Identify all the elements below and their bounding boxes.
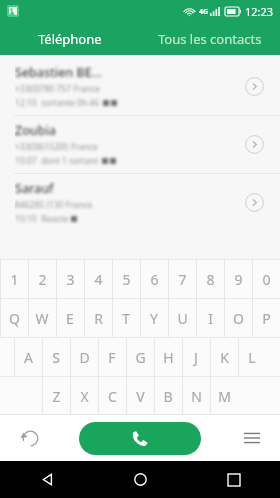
button[interactable]: 8 — [196, 260, 224, 299]
staticText: C — [108, 387, 117, 406]
button[interactable]: R — [84, 299, 112, 338]
staticText: 1 — [10, 270, 19, 289]
button[interactable]: D — [70, 338, 98, 377]
button[interactable]: 4 — [84, 260, 112, 299]
staticText: Q — [9, 309, 20, 328]
staticText: I — [208, 309, 213, 328]
button[interactable]: Détails — [228, 174, 280, 231]
button[interactable]: N — [182, 377, 210, 415]
staticText: 10:07 dont 1 sortant — [15, 155, 99, 167]
button[interactable]: 5 — [112, 260, 140, 299]
button[interactable]: V — [126, 377, 154, 415]
button[interactable]: Y — [140, 299, 168, 338]
staticText: Sarauf — [15, 180, 54, 197]
staticText: Z — [52, 387, 61, 406]
button[interactable]: Z — [42, 377, 70, 415]
button[interactable]: Accueil — [94, 461, 187, 498]
button[interactable]: Zoubia — [0, 116, 280, 173]
staticText: 12:23 — [245, 4, 274, 19]
staticText: 12:10 sortante 0h 46 — [15, 97, 100, 109]
staticText: R — [94, 309, 103, 328]
staticText: L — [248, 348, 256, 367]
staticText: G — [135, 348, 146, 367]
staticText: A — [24, 348, 33, 367]
staticText: 4 — [94, 270, 103, 289]
button[interactable]: X — [70, 377, 98, 415]
button[interactable]: W — [28, 299, 56, 338]
button[interactable]: Sebastien BE... — [0, 58, 280, 115]
staticText: 3 — [66, 270, 75, 289]
button[interactable]: Historique — [16, 424, 44, 452]
button[interactable]: U — [168, 299, 196, 338]
staticText: U — [177, 309, 188, 328]
staticText: M — [218, 387, 231, 406]
staticText: Sebastien BE... — [15, 64, 102, 81]
staticText: Zoubia — [15, 122, 56, 139]
button[interactable]: 0 — [252, 260, 280, 299]
button[interactable]: T — [112, 299, 140, 338]
button[interactable]: Détails — [228, 58, 280, 115]
button[interactable]: Tous les contacts — [140, 22, 280, 55]
button[interactable]: L — [238, 338, 266, 377]
staticText: W — [35, 309, 49, 328]
button[interactable]: 3 — [56, 260, 84, 299]
button[interactable]: J — [182, 338, 210, 377]
button[interactable]: 6 — [140, 260, 168, 299]
button[interactable]: 1 — [0, 260, 28, 299]
button[interactable]: H — [154, 338, 182, 377]
staticText: 4G — [199, 7, 209, 17]
button[interactable]: Sarauf — [0, 174, 280, 231]
staticText: X — [80, 387, 89, 406]
staticText: O — [233, 309, 244, 328]
staticText: +33(0)615205 France — [15, 141, 98, 153]
staticText: Y — [150, 309, 158, 328]
staticText: B — [163, 387, 173, 406]
staticText: 6 — [150, 270, 159, 289]
staticText: S — [52, 348, 60, 367]
button[interactable]: S — [42, 338, 70, 377]
button[interactable]: B — [154, 377, 182, 415]
button[interactable]: C — [98, 377, 126, 415]
staticText: 846285 (130 France — [15, 199, 93, 211]
staticText: T — [122, 309, 130, 328]
button[interactable]: A — [14, 338, 42, 377]
staticText: N — [191, 387, 202, 406]
button[interactable]: F — [98, 338, 126, 377]
staticText: 10:10 Reacte — [15, 213, 68, 225]
button[interactable]: I — [196, 299, 224, 338]
button[interactable]: 7 — [168, 260, 196, 299]
staticText: Téléphone — [38, 30, 102, 48]
button[interactable]: Q — [0, 299, 28, 338]
staticText: P — [262, 309, 271, 328]
staticText: +33(0)780 757 France — [15, 83, 100, 95]
staticText: Tous les contacts — [158, 30, 262, 48]
staticText: 0 — [262, 270, 271, 289]
staticText: D — [79, 348, 90, 367]
button[interactable]: G — [126, 338, 154, 377]
staticText: 7 — [178, 270, 187, 289]
button[interactable]: Applications récentes — [187, 461, 280, 498]
staticText: 5 — [122, 270, 131, 289]
button[interactable]: Menu — [238, 424, 266, 452]
button[interactable]: M — [210, 377, 238, 415]
staticText: F — [108, 348, 116, 367]
button[interactable]: K — [210, 338, 238, 377]
staticText: 2 — [38, 270, 47, 289]
button[interactable]: 2 — [28, 260, 56, 299]
staticText: V — [136, 387, 145, 406]
staticText: H — [163, 348, 174, 367]
button[interactable]: Appeler — [79, 422, 201, 455]
button[interactable]: Retour — [0, 461, 94, 498]
button[interactable]: Détails — [228, 116, 280, 173]
button[interactable]: E — [56, 299, 84, 338]
staticText: K — [220, 348, 229, 367]
staticText: J — [194, 348, 198, 367]
button[interactable]: O — [224, 299, 252, 338]
button[interactable]: Téléphone — [0, 22, 140, 55]
button[interactable]: 9 — [224, 260, 252, 299]
staticText: 9 — [234, 270, 243, 289]
staticText: 8 — [206, 270, 215, 289]
staticText: E — [66, 309, 74, 328]
button[interactable]: P — [252, 299, 280, 338]
